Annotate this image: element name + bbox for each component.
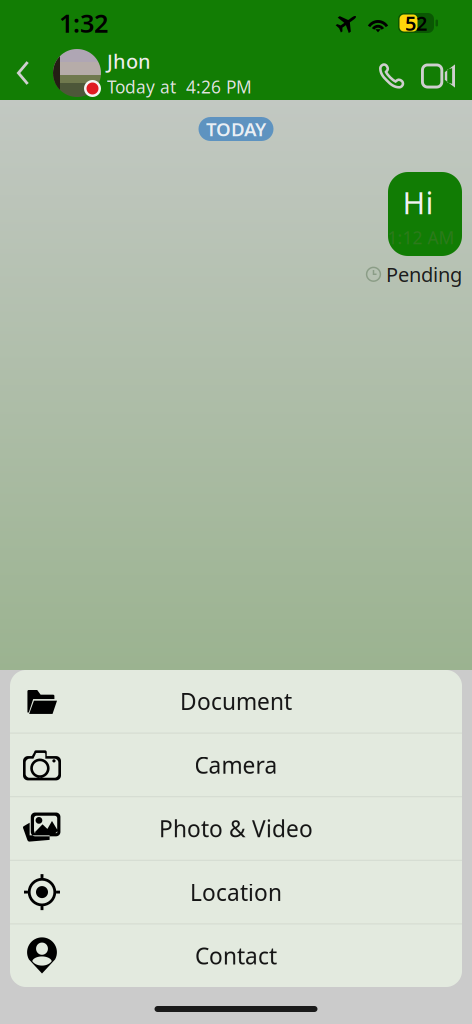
button[interactable]: Jhon [53, 44, 252, 102]
staticText: Pending [386, 261, 462, 288]
staticText: Photo & Video [159, 813, 313, 843]
button[interactable]: Contact [10, 924, 462, 987]
staticText: Document [180, 686, 292, 716]
button[interactable]: Document [10, 670, 462, 733]
button[interactable]: Location [10, 861, 462, 923]
staticText: Today at 4:26 PM [107, 75, 252, 98]
staticText: Jhon [107, 48, 151, 74]
button[interactable]: Video call [414, 50, 462, 95]
button[interactable]: Back [0, 50, 53, 96]
staticText: Location [190, 877, 282, 907]
staticText: 1:32 [59, 6, 108, 40]
staticText: 1:12 AM [387, 226, 454, 249]
button[interactable]: Photo & Video [10, 797, 462, 860]
button[interactable]: Voice call [368, 50, 414, 95]
staticText: Contact [195, 941, 277, 971]
staticText: Camera [194, 750, 277, 780]
staticText: Hi [402, 182, 433, 223]
staticText: TODAY [206, 117, 266, 141]
staticText: 52 [405, 10, 427, 36]
button[interactable]: Camera [10, 734, 462, 796]
